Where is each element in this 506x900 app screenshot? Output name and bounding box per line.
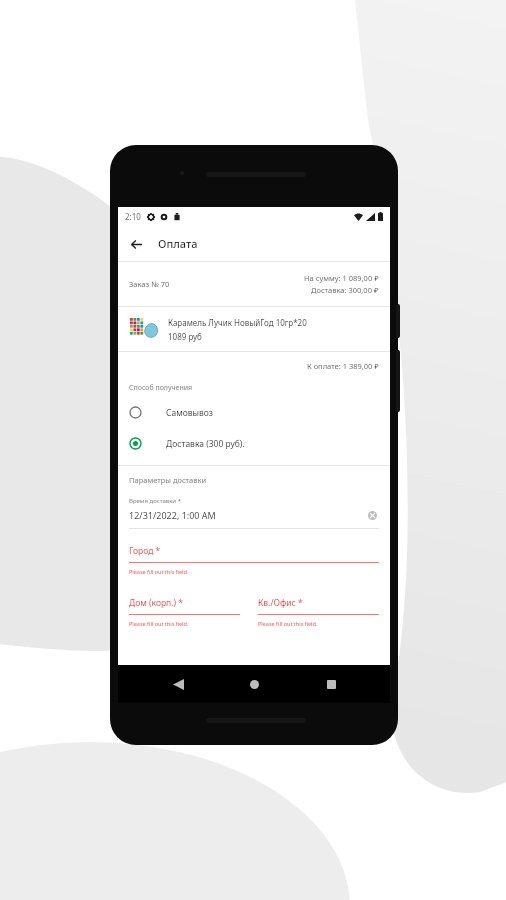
staticText: Доставка: 300,00 ₽ [311, 285, 379, 295]
button[interactable]: Home [237, 667, 271, 701]
staticText: Заказ № 70 [129, 279, 170, 289]
button[interactable]: Самовывоз [118, 397, 390, 428]
button[interactable]: Карамель Лучик НовыйГод 10гр*20 [129, 307, 379, 351]
staticText: К оплате: 1 389,00 ₽ [307, 361, 379, 371]
button[interactable]: Город * [129, 545, 379, 575]
staticText: 12/31/2022, 1:00 AM [129, 509, 216, 521]
staticText: Карамель Лучик НовыйГод 10гр*20 [168, 317, 307, 328]
staticText: Please fill out this field. [258, 620, 318, 627]
staticText: Город * [129, 545, 161, 557]
button[interactable]: 12/31/2022, 1:00 AM [129, 508, 379, 522]
staticText: Дом (корп.) * [129, 597, 183, 609]
button[interactable]: Доставка (300 руб). [118, 428, 390, 459]
button[interactable]: Back [123, 231, 149, 257]
staticText: Please fill out this field. [129, 568, 189, 575]
staticText: На сумму: 1 089,00 ₽ [304, 273, 379, 283]
button[interactable]: Back [161, 667, 195, 701]
staticText: Время доставки * [129, 497, 181, 505]
button[interactable]: Кв./Офис * [258, 597, 379, 627]
staticText: 2:10 [125, 211, 141, 222]
staticText: Доставка (300 руб). [166, 438, 245, 450]
staticText: Способ получения [129, 383, 193, 393]
staticText: Параметры доставки [129, 475, 207, 485]
staticText: Самовывоз [166, 407, 213, 419]
button[interactable]: Clear [365, 508, 379, 522]
button[interactable]: Дом (корп.) * [129, 597, 250, 627]
staticText: Кв./Офис * [258, 597, 303, 609]
button[interactable]: Recent apps [314, 667, 348, 701]
staticText: 1089 руб [168, 331, 202, 342]
staticText: Оплата [158, 236, 198, 251]
staticText: Please fill out this field. [129, 620, 189, 627]
